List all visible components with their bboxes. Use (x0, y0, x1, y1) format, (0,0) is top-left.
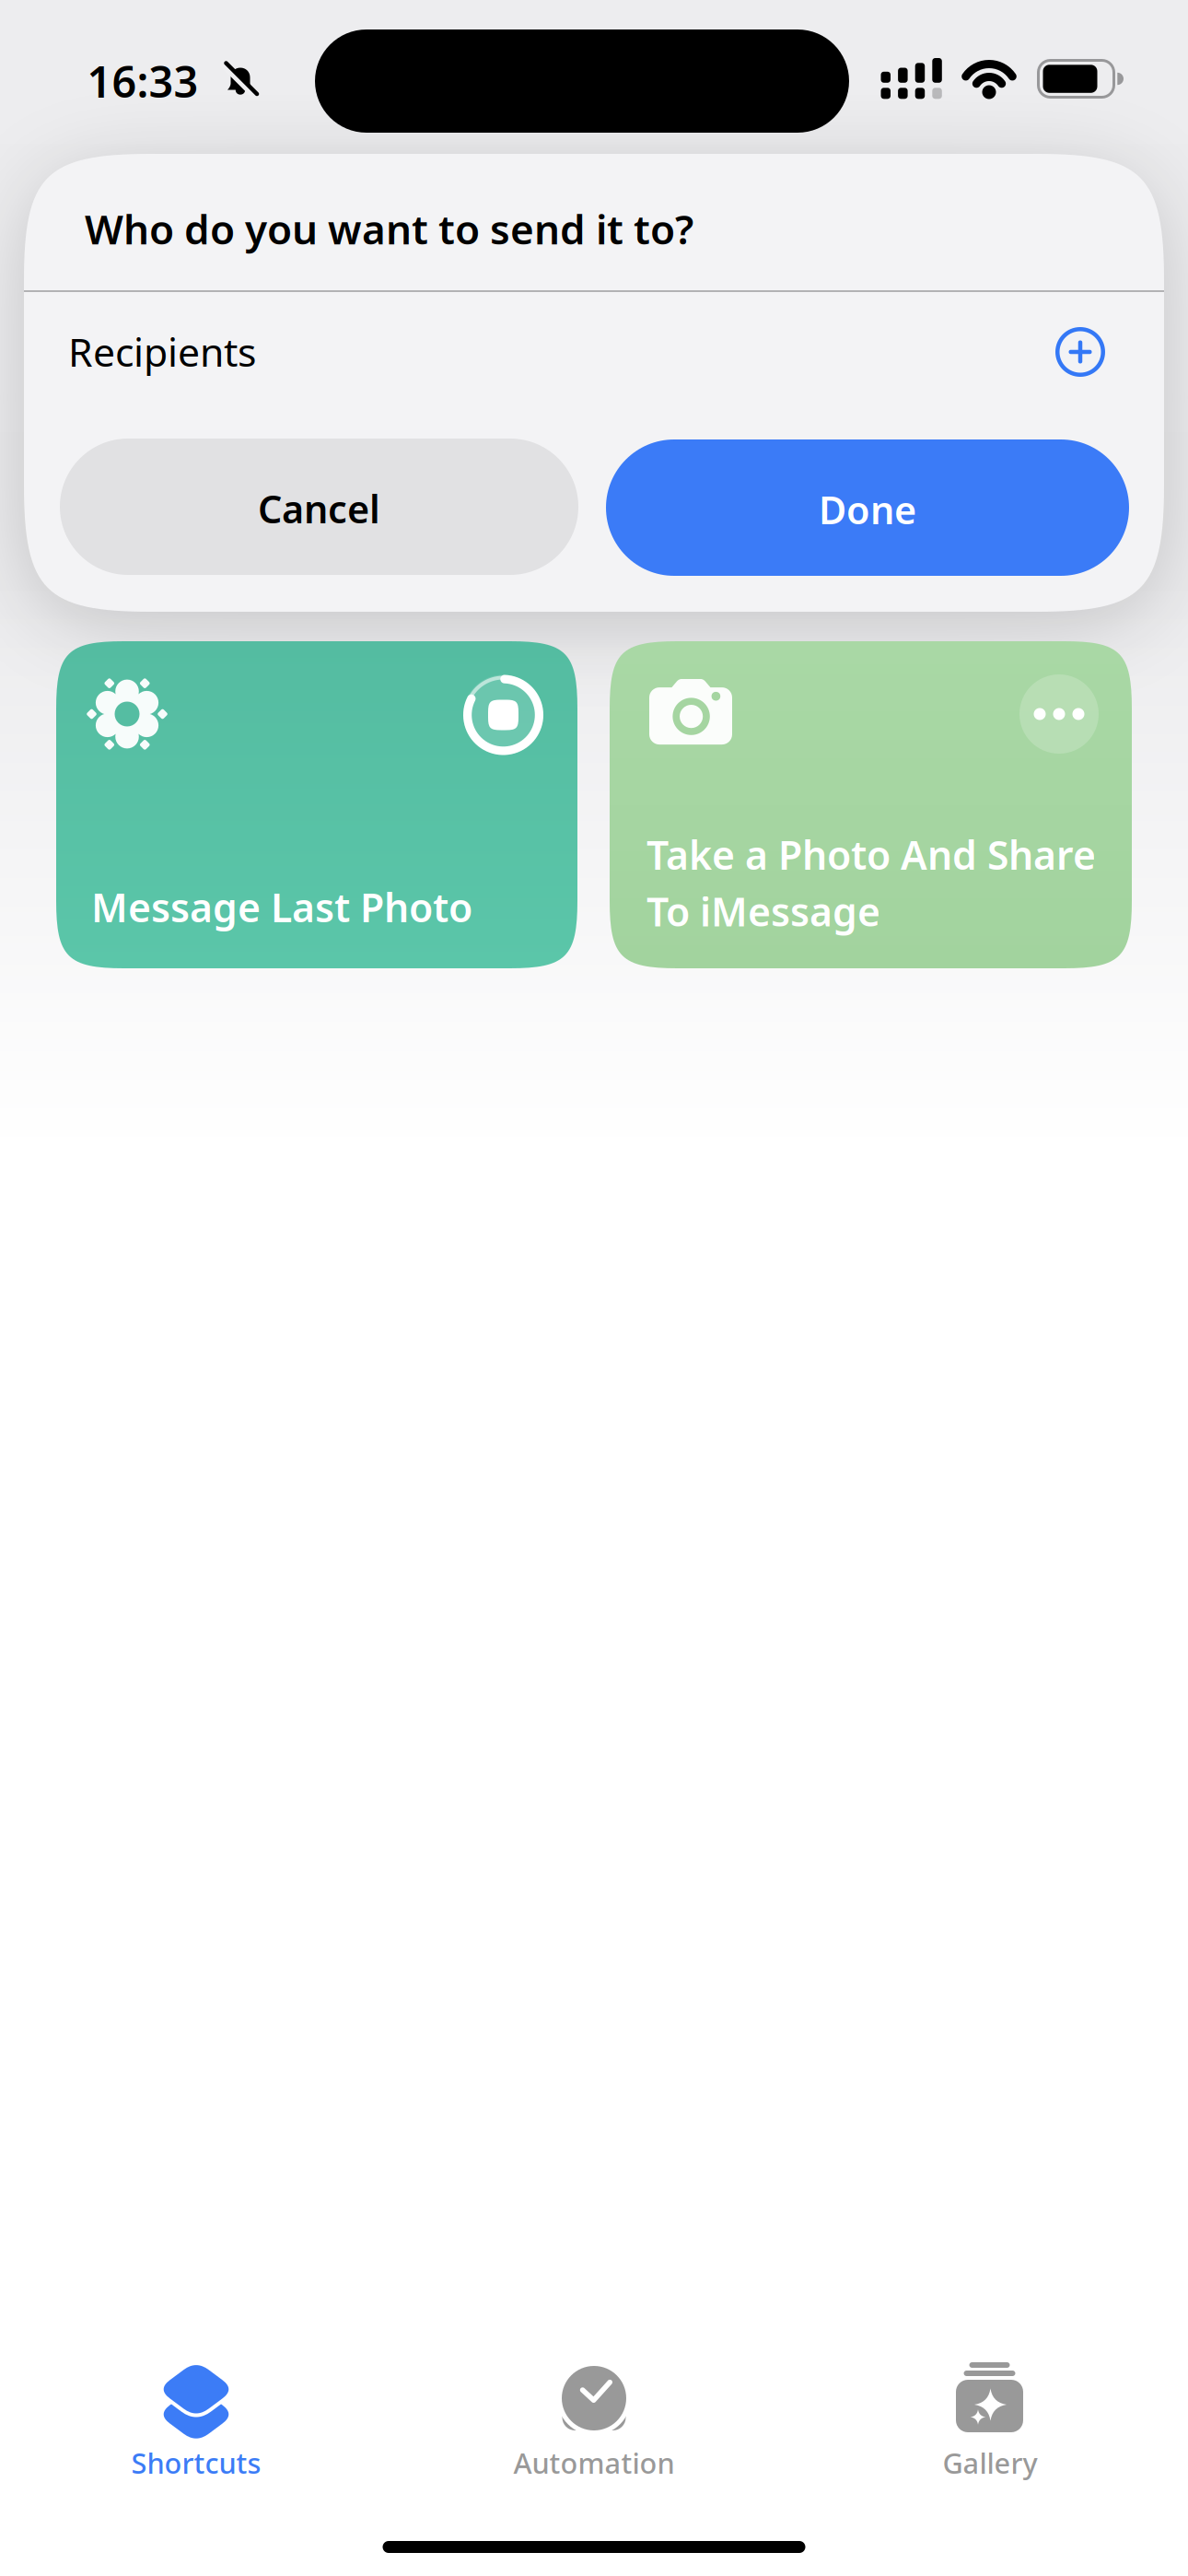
button[interactable]: More options (1019, 674, 1099, 754)
staticText: Done (819, 484, 916, 535)
staticText: Message Last Photo (91, 881, 472, 933)
button[interactable]: Add recipient (1048, 320, 1112, 384)
staticText: Take a Photo And Share (646, 828, 1096, 881)
staticText: 16:33 (87, 53, 198, 110)
staticText: Gallery (943, 2444, 1037, 2481)
staticText: Who do you want to send it to? (85, 202, 693, 256)
button[interactable]: Done (606, 439, 1129, 576)
staticText: Recipients (68, 325, 256, 377)
button[interactable]: Shortcuts (21, 2354, 1188, 2576)
staticText: Cancel (258, 483, 380, 534)
staticText: Shortcuts (131, 2444, 261, 2481)
button[interactable]: Message Last Photo (56, 641, 577, 968)
staticText: To iMessage (646, 885, 880, 937)
button[interactable]: Take a Photo And Share (610, 641, 1132, 968)
button[interactable]: Cancel (60, 439, 578, 575)
button[interactable]: Automation (419, 2354, 1188, 2576)
staticText: Automation (513, 2444, 675, 2481)
button[interactable]: Gallery (815, 2354, 1188, 2576)
